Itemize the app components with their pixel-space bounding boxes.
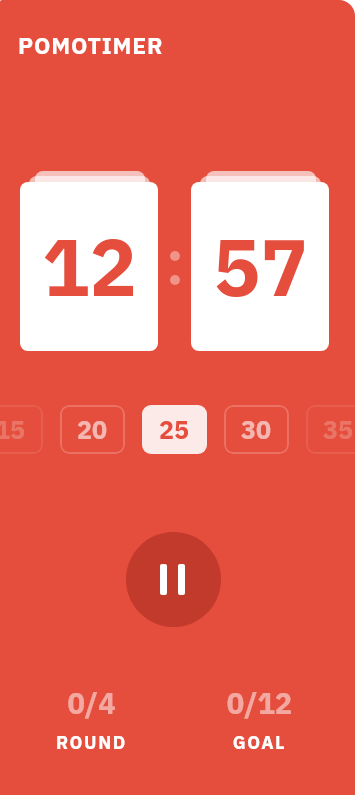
button[interactable]: 20 — [60, 405, 125, 454]
button[interactable]: Pause timer — [126, 532, 221, 627]
staticText: 25 — [159, 413, 190, 446]
staticText: POMOTIMER — [18, 30, 164, 60]
staticText: 30 — [241, 413, 272, 446]
button[interactable]: 15 — [0, 405, 43, 454]
staticText: 0/12 — [189, 684, 330, 722]
button[interactable]: 25 — [142, 405, 207, 454]
staticText: 12 — [42, 215, 137, 318]
staticText: 35 — [323, 413, 354, 446]
staticText: 20 — [77, 413, 108, 446]
staticText: GOAL — [189, 731, 330, 754]
staticText: 15 — [0, 413, 26, 446]
staticText: 57 — [213, 215, 308, 318]
button[interactable]: 30 — [224, 405, 289, 454]
staticText: ROUND — [21, 731, 162, 754]
button[interactable]: 35 — [306, 405, 355, 454]
staticText: 0/4 — [21, 684, 162, 722]
